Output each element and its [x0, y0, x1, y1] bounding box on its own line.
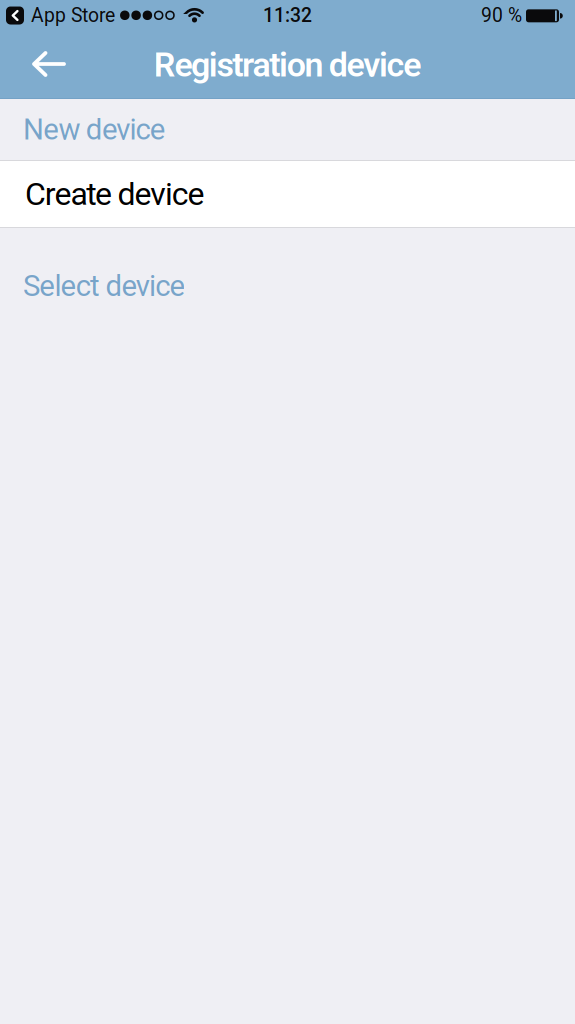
staticText: App Store: [31, 4, 115, 27]
staticText: 11:32: [263, 4, 312, 27]
staticText: Registration device: [154, 45, 421, 85]
staticText: 90 %: [481, 4, 522, 27]
staticText: Create device: [25, 175, 205, 213]
button[interactable]: Create device: [0, 160, 575, 228]
staticText: New device: [23, 112, 166, 147]
button[interactable]: App Store: [6, 4, 115, 27]
staticText: Select device: [23, 269, 185, 303]
button[interactable]: [0, 31, 66, 99]
